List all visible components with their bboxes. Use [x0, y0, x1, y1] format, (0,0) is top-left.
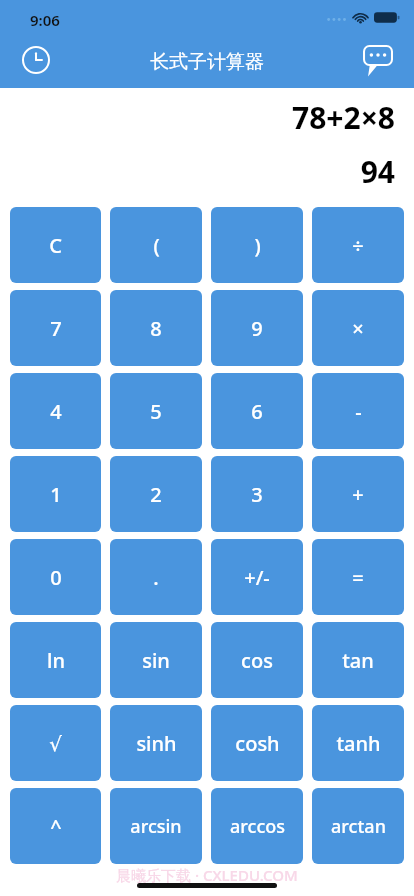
button[interactable]: 1 [10, 456, 101, 532]
staticText: ^ [50, 813, 62, 840]
button[interactable]: + [312, 456, 404, 532]
staticText: 94 [360, 151, 395, 192]
staticText: 6 [251, 398, 263, 425]
button[interactable]: 9 [211, 290, 303, 366]
staticText: ÷ [352, 232, 364, 259]
button[interactable]: 0 [10, 539, 101, 615]
staticText: arctan [331, 814, 386, 839]
button[interactable]: 5 [110, 373, 202, 449]
button[interactable]: tanh [312, 705, 404, 781]
staticText: ( [153, 232, 160, 259]
staticText: ln [47, 647, 65, 674]
button[interactable]: 7 [10, 290, 101, 366]
button[interactable]: History [16, 40, 56, 80]
button[interactable]: +/- [211, 539, 303, 615]
button[interactable]: cos [211, 622, 303, 698]
staticText: 0 [50, 564, 62, 591]
staticText: = [352, 564, 364, 591]
button[interactable]: sin [110, 622, 202, 698]
staticText: cos [241, 647, 273, 674]
staticText: sinh [136, 730, 177, 757]
staticText: tanh [336, 730, 381, 757]
staticText: C [49, 232, 62, 259]
button[interactable]: ln [10, 622, 101, 698]
staticText: 5 [150, 398, 162, 425]
button[interactable]: 3 [211, 456, 303, 532]
button[interactable]: arcsin [110, 788, 202, 864]
button[interactable]: arctan [312, 788, 404, 864]
button[interactable]: × [312, 290, 404, 366]
staticText: 9:06 [30, 10, 60, 30]
staticText: 4 [50, 398, 62, 425]
staticText: × [352, 315, 364, 342]
button[interactable]: 2 [110, 456, 202, 532]
staticText: 78+2×8 [292, 97, 395, 138]
staticText: cosh [235, 730, 280, 757]
button[interactable]: ^ [10, 788, 101, 864]
staticText: sin [142, 647, 170, 674]
button[interactable]: Feedback [358, 40, 398, 80]
button[interactable]: arccos [211, 788, 303, 864]
button[interactable]: ) [211, 207, 303, 283]
button[interactable]: = [312, 539, 404, 615]
button[interactable]: 6 [211, 373, 303, 449]
staticText: + [352, 481, 364, 508]
button[interactable]: 8 [110, 290, 202, 366]
staticText: 2 [150, 481, 162, 508]
button[interactable]: C [10, 207, 101, 283]
staticText: 长式子计算器 [150, 50, 264, 74]
staticText: 8 [150, 315, 162, 342]
staticText: tan [342, 647, 374, 674]
button[interactable]: - [312, 373, 404, 449]
staticText: . [153, 564, 159, 591]
button[interactable]: sinh [110, 705, 202, 781]
staticText: arccos [230, 814, 285, 839]
button[interactable]: ( [110, 207, 202, 283]
staticText: +/- [244, 564, 270, 591]
button[interactable]: ÷ [312, 207, 404, 283]
staticText: √ [49, 732, 62, 755]
button[interactable]: 4 [10, 373, 101, 449]
staticText: 9 [251, 315, 263, 342]
button[interactable]: . [110, 539, 202, 615]
staticText: 1 [50, 481, 62, 508]
button[interactable]: cosh [211, 705, 303, 781]
button[interactable]: tan [312, 622, 404, 698]
staticText: ) [254, 232, 261, 259]
staticText: arcsin [130, 814, 182, 839]
staticText: 7 [50, 315, 62, 342]
button[interactable]: √ [10, 705, 101, 781]
staticText: 3 [251, 481, 263, 508]
staticText: - [355, 398, 362, 425]
staticText: 晨曦乐下载 · CXLEDU.COM [116, 865, 298, 885]
